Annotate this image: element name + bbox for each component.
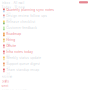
staticText: Hiring xyxy=(6,38,15,42)
staticText: Weekly status update xyxy=(6,56,41,60)
staticText: Sent xyxy=(1,84,8,88)
staticText: 2h xyxy=(6,30,10,33)
staticText: 2d xyxy=(6,66,10,69)
button[interactable]: Hiring xyxy=(0,38,90,44)
staticText: Customer feedback xyxy=(6,26,37,30)
button[interactable]: Infra notes today xyxy=(0,50,90,56)
button[interactable]: Roadmap xyxy=(0,32,90,38)
staticText: Release checklist xyxy=(6,20,35,24)
staticText: Roadmap xyxy=(6,32,21,36)
staticText: 4h xyxy=(6,42,10,45)
button[interactable]: Offsite xyxy=(0,44,90,50)
staticText: Today · 12 new xyxy=(1,6,24,9)
button[interactable]: Customer feedback xyxy=(0,26,90,32)
staticText: 3d xyxy=(6,72,10,75)
button[interactable]: Design review follow ups xyxy=(0,14,90,20)
staticText: Team standup recap xyxy=(6,68,39,72)
staticText: 1h xyxy=(6,24,9,27)
staticText: Offsite xyxy=(6,44,16,48)
staticText: Design review follow ups xyxy=(6,14,47,18)
staticText: 12m xyxy=(6,18,11,21)
staticText: 8h xyxy=(6,54,10,57)
button[interactable]: Team standup recap xyxy=(0,68,90,74)
staticText: Inbox · All mail xyxy=(1,1,24,5)
button[interactable]: Support queue digest xyxy=(0,62,90,68)
button[interactable]: Quarterly planning sync notes xyxy=(0,8,90,14)
staticText: 1d xyxy=(6,60,9,63)
staticText: 3h xyxy=(6,36,10,39)
button[interactable]: Release checklist xyxy=(0,20,90,26)
staticText: 3m xyxy=(6,12,10,15)
staticText: Infra notes today xyxy=(6,50,33,54)
staticText: Archive xyxy=(1,75,12,78)
button[interactable]: Compose xyxy=(79,1,88,3)
staticText: 6h xyxy=(6,48,10,51)
staticText: Quarterly planning sync notes xyxy=(6,8,54,12)
staticText: Support queue digest xyxy=(6,62,40,66)
button[interactable]: Weekly status update xyxy=(0,56,90,62)
staticText: Drafts xyxy=(1,80,8,83)
